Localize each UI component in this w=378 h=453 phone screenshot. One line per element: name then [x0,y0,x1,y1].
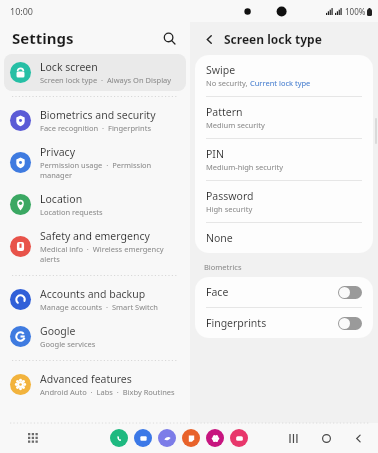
staticText: Screen lock type · Always On Display [40,75,172,85]
staticText: Medical info · Wireless emergency alerts [40,244,180,264]
staticText: Manage accounts · Smart Switch [40,302,158,312]
staticText: Biometrics [204,262,242,272]
staticText: Fingerprints [206,316,267,330]
staticText: Advanced features [40,372,132,386]
button[interactable]: None [195,223,373,253]
button[interactable]: Back [350,430,366,446]
staticText: 10:00 [10,5,34,17]
staticText: Accounts and backup [40,287,146,301]
staticText: Face [206,285,229,299]
staticText: Medium security [206,120,265,130]
button[interactable]: Password [195,181,373,222]
staticText: Face recognition · Fingerprints [40,123,151,133]
staticText: Privacy [40,145,76,159]
button[interactable]: App [110,429,128,447]
button[interactable]: Back [200,30,218,48]
staticText: Pattern [206,105,243,119]
button[interactable]: Pattern [195,97,373,138]
staticText: PIN [206,147,224,161]
button[interactable]: App [134,429,152,447]
staticText: Google services [40,339,96,349]
button[interactable]: Lock screen [4,54,186,91]
staticText: Current lock type [250,78,311,88]
staticText: Google [40,324,76,338]
staticText: Password [206,189,254,203]
button[interactable]: App [206,429,224,447]
staticText: Medium-high security [206,162,284,172]
staticText: Permission usage · Permission manager [40,160,180,180]
staticText: No security, [206,78,250,88]
button[interactable]: Fingerprints [195,308,373,338]
staticText: Lock screen [40,60,98,74]
button[interactable]: PIN [195,139,373,180]
button[interactable]: Recents [286,430,302,446]
staticText: Screen lock type [224,31,322,47]
button[interactable]: App [230,429,248,447]
staticText: Safety and emergency [40,229,150,243]
button[interactable]: Face [195,277,373,307]
button[interactable]: Home [318,430,334,446]
button[interactable]: Search [158,27,180,49]
staticText: Swipe [206,63,236,77]
button[interactable]: Apps [25,430,41,446]
staticText: 100% [345,6,366,17]
staticText: Location requests [40,207,103,217]
button[interactable]: Biometrics and security [4,102,186,139]
button[interactable]: App [182,429,200,447]
button[interactable]: Accounts and backup [4,281,186,318]
button[interactable]: Location [4,186,186,223]
button[interactable]: Safety and emergency [4,223,186,270]
staticText: Location [40,192,83,206]
button[interactable]: Swipe [195,55,373,96]
button[interactable]: Google [4,318,186,355]
staticText: High security [206,204,253,214]
button[interactable]: Advanced features [4,366,186,403]
button[interactable]: Privacy [4,139,186,186]
staticText: Settings [12,28,74,48]
staticText: Android Auto · Labs · Bixby Routines [40,387,175,397]
staticText: Biometrics and security [40,108,156,122]
staticText: None [206,231,233,245]
button[interactable]: App [158,429,176,447]
